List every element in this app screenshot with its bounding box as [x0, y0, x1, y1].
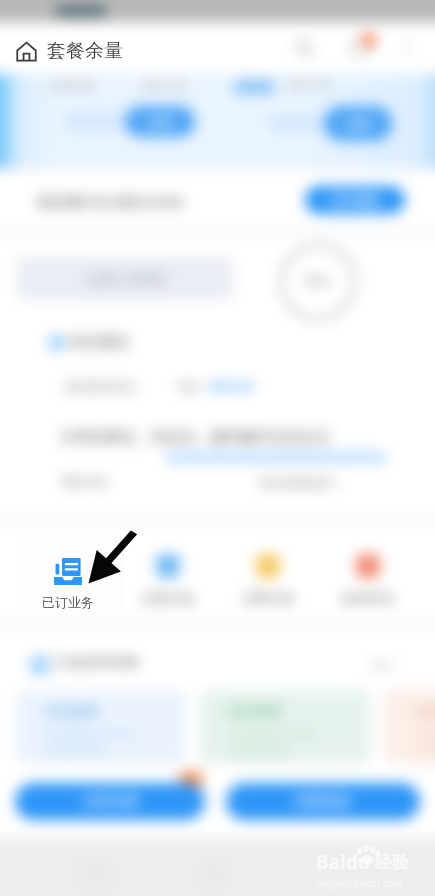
staticText: 流量充值	[142, 590, 194, 606]
staticText: 89元畅享	[229, 702, 283, 720]
staticText: 已订业务	[42, 594, 94, 610]
staticText: Baidu	[316, 849, 371, 875]
button[interactable]: 已订业务	[18, 535, 124, 615]
staticText: 办理	[346, 116, 370, 131]
staticText: 套餐余量	[47, 39, 123, 63]
button[interactable]: 59元畅享	[16, 690, 186, 764]
staticText: 国内通话时长	[65, 379, 137, 394]
button[interactable]: Messages	[343, 31, 377, 65]
button[interactable]: 129元畅享	[384, 690, 435, 764]
staticText: 180分钟	[206, 377, 255, 395]
staticText: 领流量红包 最高20GB	[36, 191, 183, 211]
staticText: 剩余	[178, 379, 202, 394]
staticText: 129元畅享	[413, 702, 435, 720]
staticText: 已用 2.38GB	[86, 269, 165, 288]
staticText: 办理	[148, 114, 172, 129]
staticText: 账单查询	[342, 590, 394, 606]
staticText: 59元畅享	[45, 702, 99, 720]
staticText: 话费充值	[242, 590, 294, 606]
staticText: 经验	[375, 852, 409, 873]
button[interactable]: Search	[289, 33, 319, 63]
button[interactable]: 查看更多	[226, 783, 420, 820]
staticText: 立即领取	[329, 192, 381, 208]
button[interactable]: 账单查询	[318, 554, 418, 606]
button[interactable]: 89元畅享	[200, 690, 370, 764]
button[interactable]: 已订业务	[17, 554, 118, 606]
staticText: 立即办理	[82, 793, 138, 811]
staticText: 办理流量包、语音包，随时畅享无忧生活	[60, 428, 330, 447]
staticText: 已订业务	[42, 590, 94, 606]
staticText: 查看更多	[295, 793, 351, 811]
staticText: 语音通话	[69, 333, 129, 352]
button[interactable]: 话费充值	[218, 554, 318, 606]
staticText: 查看详情	[60, 474, 108, 489]
button[interactable]: 流量充值	[118, 554, 218, 606]
button[interactable]: Home	[10, 35, 42, 67]
button[interactable]: 立即办理	[15, 783, 205, 820]
button[interactable]: 办理	[125, 106, 195, 137]
staticText: 为您推荐套餐	[55, 654, 139, 672]
staticText: 剩余	[305, 272, 331, 288]
button[interactable]: 立即领取	[305, 186, 405, 214]
button[interactable]: 办理	[324, 106, 392, 141]
staticText: 更多套餐选择 >	[259, 474, 341, 490]
